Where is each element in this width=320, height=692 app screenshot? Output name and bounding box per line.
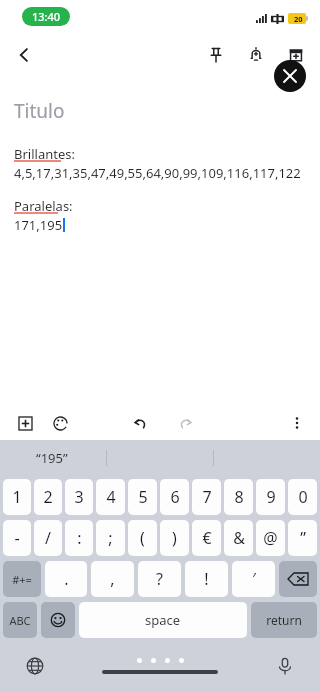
button[interactable]: 0: [288, 479, 317, 515]
button[interactable]: Change keyboard: [22, 653, 48, 679]
staticText: 13:40: [32, 9, 61, 24]
staticText: #+=: [12, 572, 32, 587]
button[interactable]: Emoji: [41, 602, 75, 638]
button[interactable]: !: [185, 561, 228, 597]
staticText: 20: [294, 14, 303, 24]
button[interactable]: ,: [91, 561, 134, 597]
staticText: ”: [300, 527, 306, 549]
button[interactable]: &: [224, 520, 253, 556]
staticText: 7: [202, 486, 212, 508]
button[interactable]: ?: [138, 561, 181, 597]
button[interactable]: space: [79, 602, 247, 638]
button[interactable]: .: [45, 561, 87, 597]
button[interactable]: Color: [45, 408, 75, 438]
button[interactable]: ): [160, 520, 189, 556]
staticText: 0: [298, 486, 308, 508]
button[interactable]: :: [65, 520, 93, 556]
staticText: .: [64, 568, 69, 590]
staticText: :: [77, 527, 82, 549]
button[interactable]: Backspace: [279, 561, 317, 597]
staticText: Titulo: [14, 98, 65, 124]
staticText: /: [45, 527, 51, 549]
staticText: 9: [266, 486, 276, 508]
button[interactable]: Archive: [276, 35, 316, 75]
button[interactable]: @: [256, 520, 285, 556]
button[interactable]: 3: [65, 479, 93, 515]
button[interactable]: #+=: [3, 561, 41, 597]
staticText: 5: [138, 486, 148, 508]
staticText: space: [145, 611, 181, 629]
button[interactable]: return: [251, 602, 317, 638]
button[interactable]: Close: [274, 60, 306, 92]
button[interactable]: 1: [3, 479, 31, 515]
staticText: ,: [110, 568, 115, 590]
button[interactable]: ABC: [3, 602, 37, 638]
button[interactable]: ;: [96, 520, 125, 556]
staticText: 1: [12, 486, 22, 508]
staticText: Paralelas:: [14, 197, 73, 215]
button[interactable]: Redo: [171, 408, 201, 438]
button[interactable]: Pin: [196, 35, 236, 75]
button[interactable]: More options: [282, 408, 312, 438]
staticText: 2: [43, 486, 53, 508]
button[interactable]: /: [34, 520, 62, 556]
staticText: 3: [74, 486, 84, 508]
staticText: return: [266, 612, 302, 628]
button[interactable]: 6: [160, 479, 189, 515]
button[interactable]: Undo: [125, 408, 155, 438]
button[interactable]: ′: [232, 561, 275, 597]
button[interactable]: Voice input: [272, 653, 298, 679]
staticText: 4: [106, 486, 116, 508]
staticText: ′: [252, 568, 256, 590]
staticText: 6: [170, 486, 180, 508]
staticText: -: [14, 527, 20, 549]
staticText: @: [263, 527, 278, 549]
button[interactable]: Reminder: [236, 35, 276, 75]
button[interactable]: 8: [224, 479, 253, 515]
button[interactable]: Back: [4, 35, 44, 75]
staticText: ABC: [9, 613, 31, 628]
staticText: !: [204, 568, 209, 590]
staticText: ): [172, 527, 177, 549]
staticText: &: [233, 527, 245, 549]
button[interactable]: 5: [128, 479, 157, 515]
button[interactable]: ”: [288, 520, 317, 556]
button[interactable]: -: [3, 520, 31, 556]
button[interactable]: 9: [256, 479, 285, 515]
staticText: 8: [234, 486, 244, 508]
staticText: (: [140, 527, 145, 549]
staticText: ?: [156, 568, 163, 590]
staticText: 171,195: [14, 216, 63, 234]
staticText: ;: [108, 527, 113, 549]
staticText: €: [202, 527, 212, 549]
staticText: Brillantes:: [14, 145, 75, 163]
staticText: 4,5,17,31,35,47,49,55,64,90,99,109,116,1…: [14, 164, 301, 182]
button[interactable]: “195”: [36, 449, 68, 467]
button[interactable]: (: [128, 520, 157, 556]
button[interactable]: 2: [34, 479, 62, 515]
button[interactable]: Add: [10, 408, 40, 438]
button[interactable]: €: [192, 520, 221, 556]
button[interactable]: 4: [96, 479, 125, 515]
button[interactable]: 7: [192, 479, 221, 515]
